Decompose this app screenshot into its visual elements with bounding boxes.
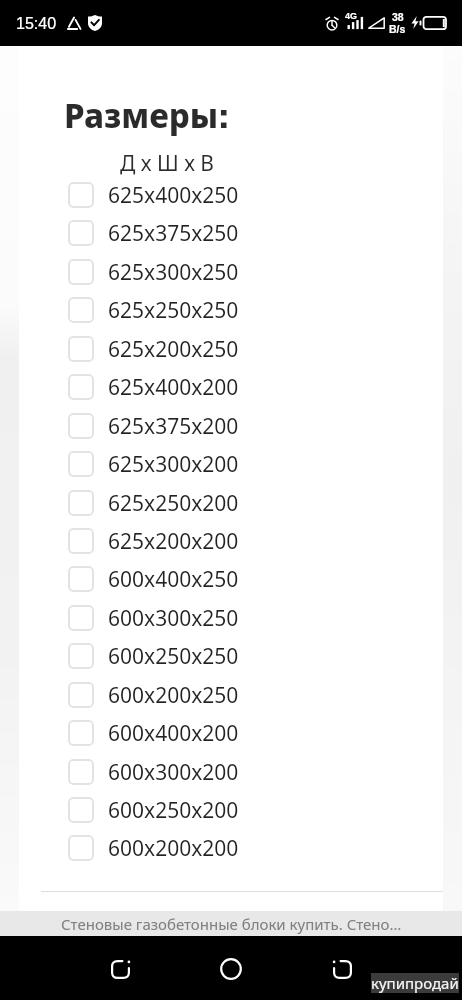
staticText: 625x300x200 — [108, 450, 239, 479]
button[interactable]: 600x300x200 — [19, 753, 443, 791]
staticText: 625x400x250 — [108, 181, 239, 210]
staticText: 600x400x200 — [108, 719, 239, 748]
button[interactable]: 625x400x200 — [19, 368, 443, 406]
staticText: 600x300x250 — [108, 604, 239, 633]
staticText: 600x250x250 — [108, 642, 239, 671]
button[interactable]: Home — [205, 943, 257, 995]
staticText: 625x250x250 — [108, 296, 239, 325]
staticText: 600x200x250 — [108, 681, 239, 710]
button[interactable]: 600x250x200 — [19, 791, 443, 829]
staticText: 625x375x200 — [108, 412, 239, 441]
button[interactable]: 625x200x200 — [19, 522, 443, 560]
button[interactable]: 625x300x250 — [19, 253, 443, 291]
button[interactable]: Back — [94, 943, 146, 995]
staticText: 15:40 — [16, 15, 57, 33]
staticText: 38 — [392, 11, 404, 23]
button[interactable]: 600x250x250 — [19, 637, 443, 675]
button[interactable]: 625x250x250 — [19, 291, 443, 329]
staticText: 600x300x200 — [108, 758, 239, 787]
button[interactable]: 600x400x200 — [19, 714, 443, 752]
button[interactable]: 625x300x200 — [19, 445, 443, 483]
button[interactable]: 625x375x250 — [19, 214, 443, 252]
button[interactable]: 625x250x200 — [19, 484, 443, 522]
button[interactable]: Recents — [316, 943, 368, 995]
staticText: Д х Ш х В — [120, 149, 214, 178]
staticText: 625x300x250 — [108, 258, 239, 287]
button[interactable]: 625x400x250 — [19, 176, 443, 214]
button[interactable]: 625x375x200 — [19, 407, 443, 445]
button[interactable]: 600x200x200 — [19, 829, 443, 867]
button[interactable]: 600x300x250 — [19, 599, 443, 637]
staticText: 4G — [345, 11, 358, 21]
staticText: 625x400x200 — [108, 373, 239, 402]
staticText: 625x200x250 — [108, 335, 239, 364]
staticText: Размеры: — [64, 93, 230, 138]
staticText: B/s — [389, 23, 406, 35]
button[interactable]: 625x200x250 — [19, 330, 443, 368]
staticText: 625x200x200 — [108, 527, 239, 556]
staticText: 600x200x200 — [108, 834, 239, 863]
button[interactable]: 600x200x250 — [19, 676, 443, 714]
staticText: Стеновые газобетонные блоки купить. Стен… — [61, 914, 402, 934]
staticText: 600x400x250 — [108, 565, 239, 594]
button[interactable]: 600x400x250 — [19, 560, 443, 598]
staticText: 625x375x250 — [108, 219, 239, 248]
button[interactable]: купипродай — [371, 973, 459, 993]
staticText: 625x250x200 — [108, 489, 239, 518]
staticText: 600x250x200 — [108, 796, 239, 825]
staticText: купипродай — [371, 973, 459, 993]
